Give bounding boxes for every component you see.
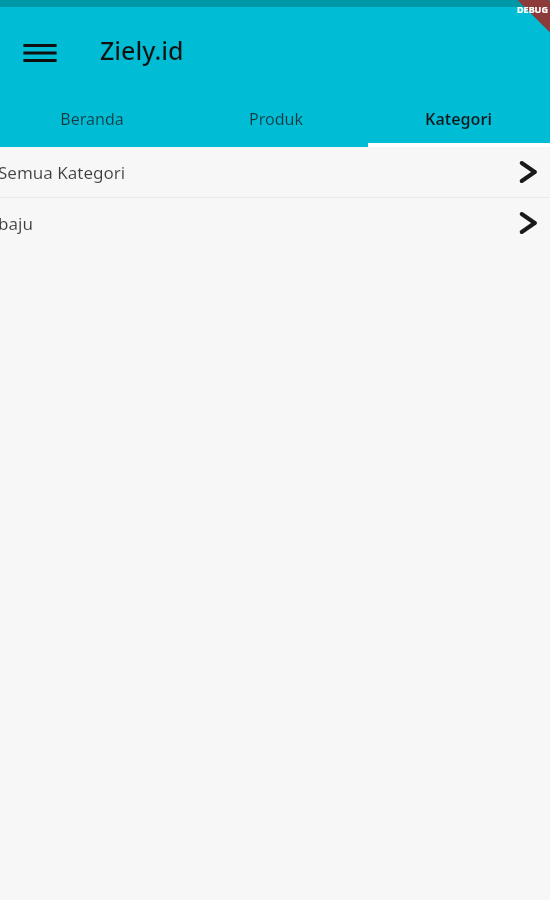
button[interactable]: Open navigation menu bbox=[12, 29, 68, 77]
staticText: Kategori bbox=[425, 108, 492, 130]
staticText: Produk bbox=[249, 108, 303, 130]
staticText: Beranda bbox=[60, 108, 124, 130]
button[interactable]: Kategori bbox=[367, 93, 550, 145]
button[interactable]: Semua Kategori bbox=[0, 147, 550, 197]
button[interactable]: Produk bbox=[184, 93, 367, 145]
button[interactable]: baju bbox=[0, 198, 550, 248]
button[interactable]: Beranda bbox=[0, 93, 184, 145]
staticText: baju bbox=[0, 212, 33, 235]
staticText: Ziely.id bbox=[100, 33, 184, 67]
staticText: Semua Kategori bbox=[0, 161, 126, 184]
staticText: DEBUG bbox=[517, 3, 548, 15]
